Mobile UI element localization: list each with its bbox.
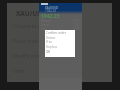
staticText: Stop loss (46, 45, 57, 49)
staticText: 0.10 (73, 27, 79, 31)
staticText: Lot (41, 27, 46, 31)
staticText: 1942.25 (45, 9, 57, 13)
staticText: 1942.25 (41, 13, 60, 20)
staticText: Place order (13, 38, 40, 45)
staticText: Confirm order (46, 31, 66, 35)
staticText: Choose to bet (13, 23, 46, 30)
button[interactable]: Confirm order (45, 30, 75, 57)
staticText: OK (46, 50, 51, 54)
staticText: Modify order (13, 53, 44, 60)
staticText: XAU/USD (16, 9, 46, 18)
staticText: Volume (46, 36, 56, 40)
staticText: Price (46, 40, 53, 44)
button[interactable]: XAU/USD (7, 3, 112, 82)
staticText: XAU/USD (45, 6, 59, 10)
